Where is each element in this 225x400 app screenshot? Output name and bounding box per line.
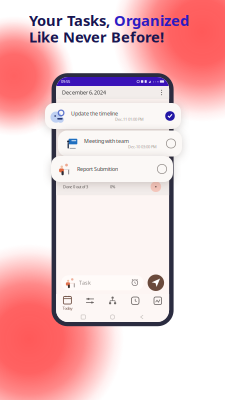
button[interactable]: Add task — [148, 274, 164, 291]
button[interactable]: Tab — [124, 294, 146, 312]
staticText: Meeting with team — [84, 137, 129, 144]
staticText: Done 0 out of 3 — [63, 184, 88, 189]
staticText: Today — [62, 305, 72, 311]
staticText: Report Submition — [77, 165, 118, 173]
button[interactable]: Report Submition — [51, 156, 173, 182]
button[interactable]: Tab — [101, 294, 124, 312]
staticText: Dec-10 03:00 PM — [128, 144, 157, 149]
staticText: 51% — [152, 80, 158, 83]
button[interactable]: Meeting with team — [58, 130, 182, 156]
staticText: Your Tasks, — [29, 10, 114, 30]
button[interactable]: More options — [157, 86, 166, 99]
staticText: 0% — [110, 184, 115, 189]
button[interactable]: Tab — [146, 294, 169, 312]
button[interactable]: Tab — [79, 294, 101, 312]
button[interactable]: Update the timeline — [45, 103, 181, 129]
staticText: Update the timeline — [71, 110, 118, 117]
staticText: Organized — [114, 10, 189, 30]
staticText: Dec-11 01:00 PM — [115, 117, 144, 122]
staticText: Task — [79, 279, 91, 286]
staticText: 09:55 — [61, 79, 70, 84]
staticText: Like Never Before! — [29, 27, 164, 46]
button[interactable]: Today — [56, 294, 79, 312]
staticText: December 6, 2024 — [62, 89, 106, 96]
